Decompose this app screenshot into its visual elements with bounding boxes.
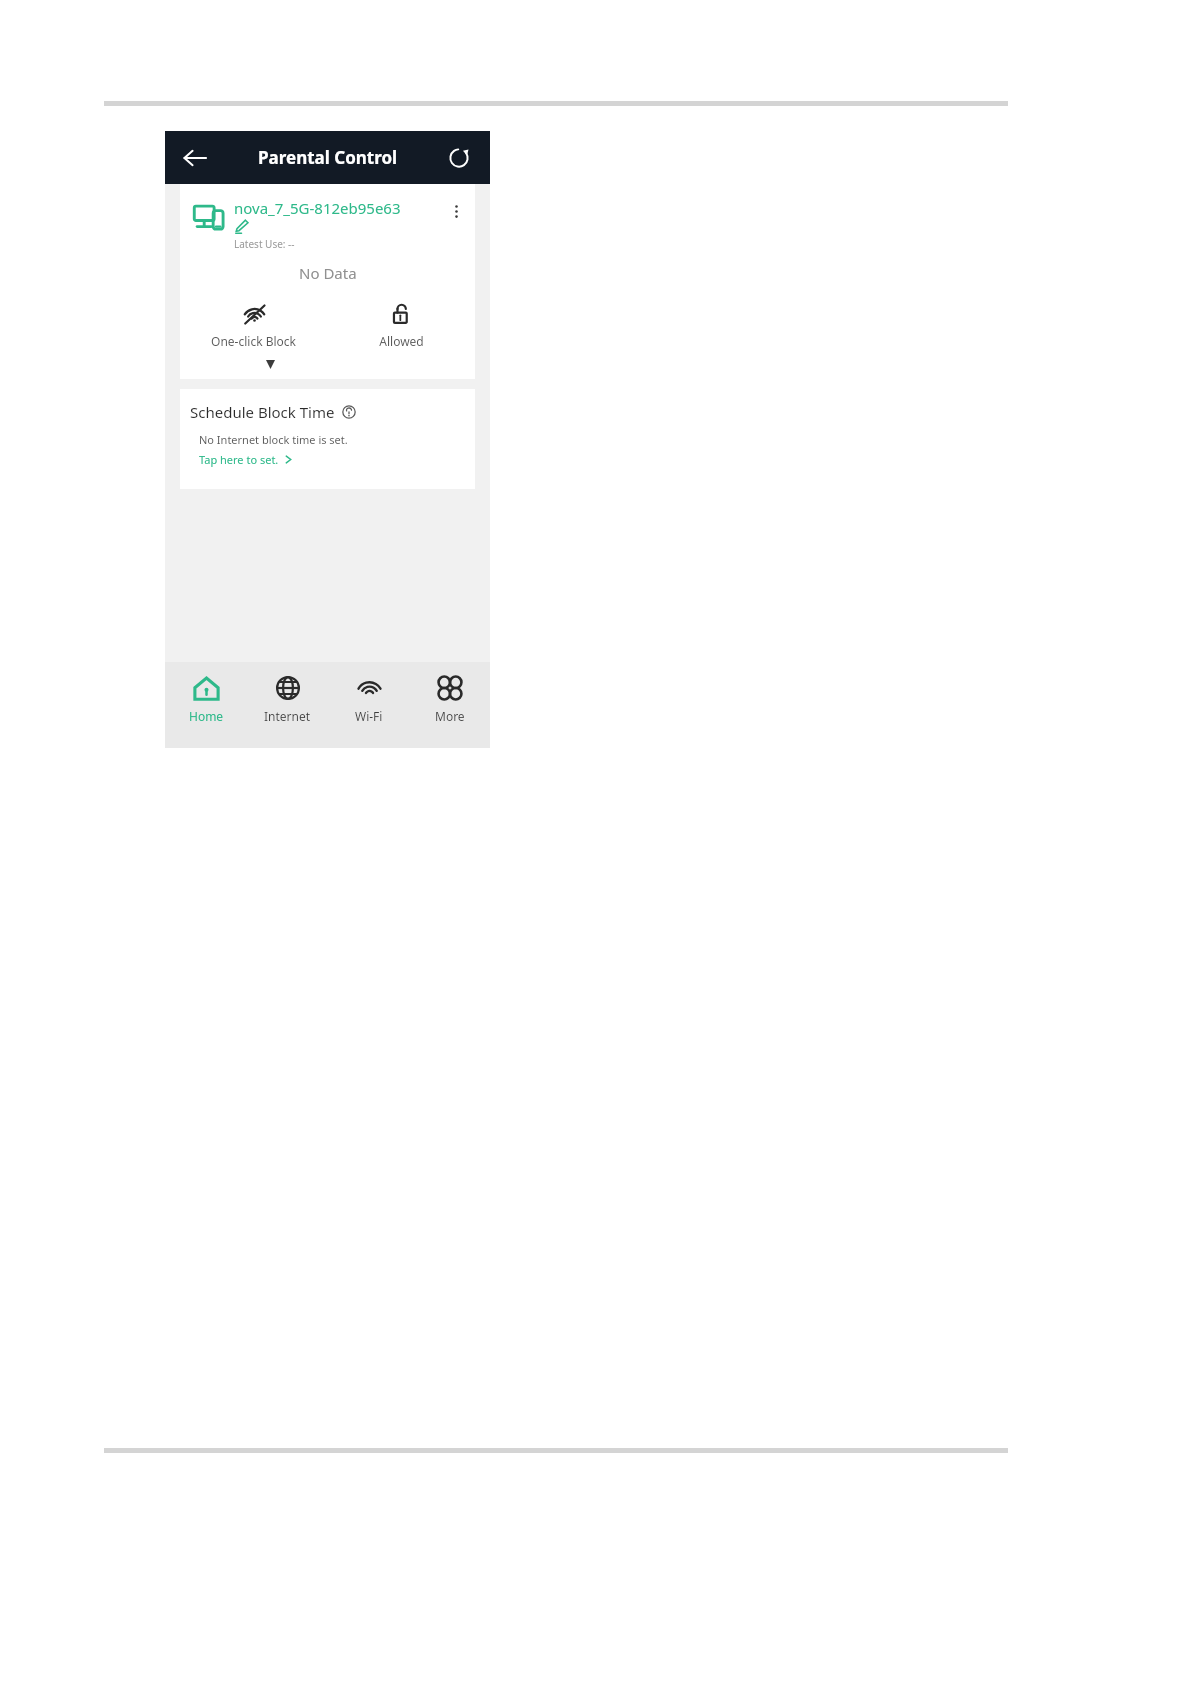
staticText: Wi-Fi <box>355 708 383 724</box>
staticText: Tap here to set. <box>199 452 279 467</box>
staticText: Home <box>189 708 224 724</box>
button[interactable]: Rename device <box>234 219 251 236</box>
button[interactable]: Help <box>340 403 358 421</box>
button[interactable]: Wi-Fi <box>328 673 409 724</box>
button[interactable]: More <box>409 673 490 724</box>
staticText: No Data <box>299 263 357 283</box>
button[interactable]: Refresh <box>439 138 479 178</box>
staticText: Internet <box>264 708 311 724</box>
button[interactable]: One-click Block <box>180 301 327 349</box>
staticText: Allowed <box>379 333 424 349</box>
staticText: nova_7_5G-812eb95e63 <box>234 198 401 218</box>
button[interactable]: Internet <box>247 673 328 724</box>
button[interactable]: Tap here to set. <box>199 452 293 467</box>
staticText: Schedule Block Time <box>190 402 335 422</box>
button[interactable]: Back <box>175 138 215 178</box>
button[interactable]: Expand <box>260 354 280 374</box>
staticText: Latest Use: -- <box>234 237 295 251</box>
staticText: More <box>435 708 465 724</box>
staticText: One-click Block <box>211 333 296 349</box>
staticText: Parental Control <box>258 146 398 169</box>
button[interactable]: Allowed <box>327 301 475 349</box>
button[interactable]: Home <box>165 673 247 724</box>
staticText: No Internet block time is set. <box>199 432 348 447</box>
button[interactable]: More options <box>443 198 469 224</box>
